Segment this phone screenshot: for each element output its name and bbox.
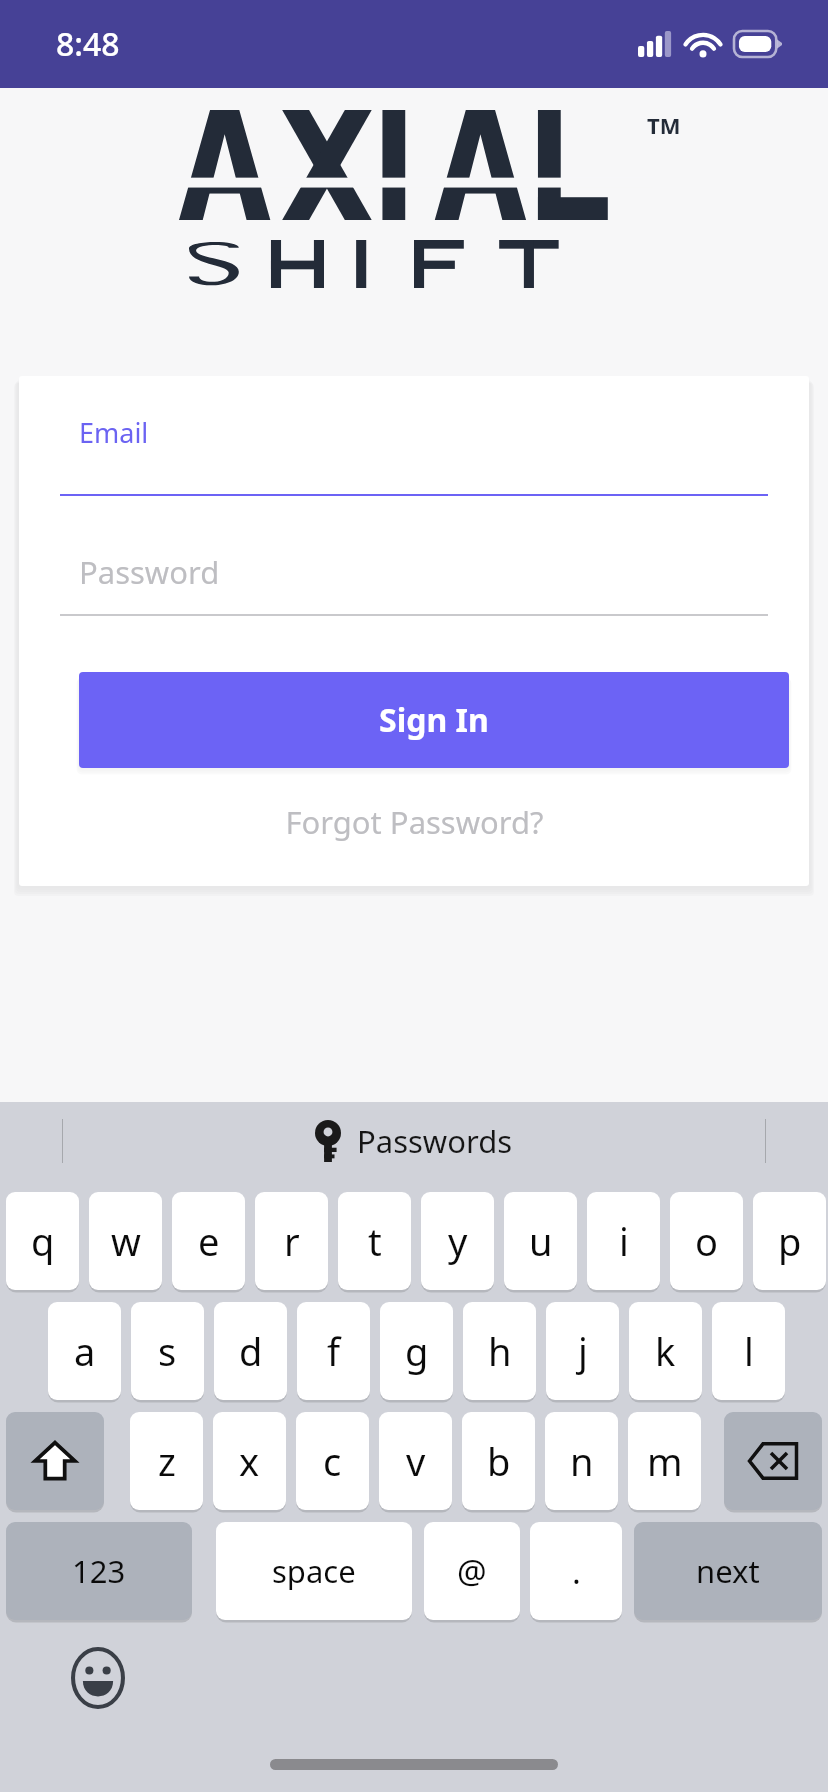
staticText: n — [570, 1435, 594, 1487]
button[interactable]: s — [131, 1302, 204, 1400]
button[interactable]: n — [545, 1412, 618, 1510]
button[interactable]: h — [463, 1302, 536, 1400]
staticText: @ — [457, 1549, 487, 1594]
staticText: Forgot Password? — [285, 801, 544, 843]
staticText: m — [647, 1435, 683, 1487]
staticText: q — [31, 1215, 55, 1267]
button[interactable]: Forgot Password? — [19, 786, 809, 858]
button[interactable]: v — [379, 1412, 452, 1510]
button[interactable]: Shift — [6, 1412, 104, 1510]
staticText: i — [619, 1215, 629, 1267]
button[interactable]: Numbers — [6, 1522, 192, 1620]
button[interactable]: x — [213, 1412, 286, 1510]
staticText: t — [368, 1215, 382, 1267]
staticText: w — [111, 1215, 141, 1267]
button[interactable]: j — [546, 1302, 619, 1400]
staticText: Passwords — [357, 1120, 513, 1162]
button[interactable]: o — [670, 1192, 743, 1290]
staticText: 123 — [72, 1550, 126, 1592]
button[interactable]: m — [628, 1412, 701, 1510]
staticText: z — [158, 1435, 176, 1487]
staticText: r — [284, 1215, 300, 1267]
staticText: u — [529, 1215, 553, 1267]
staticText: l — [744, 1325, 754, 1377]
button[interactable]: Sign In — [79, 672, 789, 768]
button[interactable] — [60, 406, 768, 498]
button[interactable]: y — [421, 1192, 494, 1290]
button[interactable]: z — [130, 1412, 203, 1510]
staticText: y — [448, 1215, 468, 1267]
button[interactable]: r — [255, 1192, 328, 1290]
staticText: c — [323, 1435, 342, 1487]
staticText: p — [778, 1215, 802, 1267]
button[interactable]: Emoji — [62, 1642, 134, 1714]
button[interactable]: q — [6, 1192, 79, 1290]
button[interactable]: w — [89, 1192, 162, 1290]
button[interactable]: b — [462, 1412, 535, 1510]
staticText: a — [74, 1325, 96, 1377]
staticText: o — [695, 1215, 718, 1267]
staticText: v — [406, 1435, 426, 1487]
button[interactable]: Password — [60, 526, 768, 618]
button[interactable]: l — [712, 1302, 785, 1400]
button[interactable]: k — [629, 1302, 702, 1400]
staticText: s — [158, 1325, 177, 1377]
button[interactable]: Space — [216, 1522, 412, 1620]
staticText: Email — [79, 414, 149, 451]
staticText: . — [572, 1549, 581, 1594]
staticText: f — [327, 1325, 341, 1377]
button[interactable]: p — [753, 1192, 826, 1290]
staticText: g — [405, 1325, 429, 1377]
button[interactable]: Period — [530, 1522, 622, 1620]
staticText: e — [198, 1215, 220, 1267]
staticText: k — [655, 1325, 676, 1377]
button[interactable]: i — [587, 1192, 660, 1290]
staticText: x — [239, 1435, 260, 1487]
button[interactable]: d — [214, 1302, 287, 1400]
button[interactable]: t — [338, 1192, 411, 1290]
staticText: 8:48 — [56, 22, 120, 66]
staticText: j — [578, 1325, 588, 1377]
button[interactable]: Next — [634, 1522, 822, 1620]
staticText: Password — [79, 551, 220, 593]
button[interactable]: f — [297, 1302, 370, 1400]
button[interactable]: Backspace — [724, 1412, 822, 1510]
button[interactable]: At sign — [424, 1522, 520, 1620]
staticText: d — [239, 1325, 263, 1377]
staticText: TM — [647, 110, 681, 140]
button[interactable]: Passwords — [249, 1102, 579, 1180]
staticText: space — [272, 1550, 356, 1592]
button[interactable]: g — [380, 1302, 453, 1400]
button[interactable]: c — [296, 1412, 369, 1510]
staticText: Sign In — [379, 698, 489, 742]
button[interactable]: a — [48, 1302, 121, 1400]
staticText: h — [488, 1325, 512, 1377]
staticText: next — [696, 1550, 760, 1592]
button[interactable]: e — [172, 1192, 245, 1290]
staticText: b — [487, 1435, 511, 1487]
button[interactable]: u — [504, 1192, 577, 1290]
